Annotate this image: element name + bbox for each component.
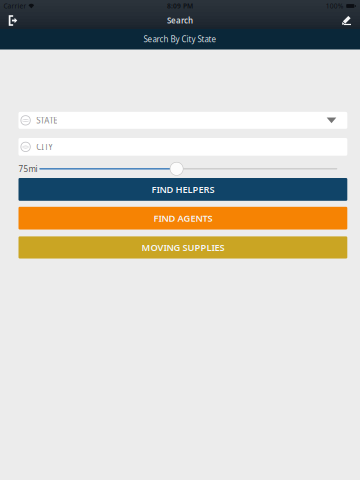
staticText: FIND AGENTS — [153, 212, 212, 224]
button[interactable]: STATE — [18, 112, 347, 129]
staticText: 8:09 PM — [167, 2, 193, 10]
staticText: CITY — [36, 141, 53, 152]
staticText: MOVING SUPPLIES — [141, 241, 224, 254]
staticText: 100% — [326, 2, 344, 10]
button[interactable]: FIND HELPERS — [18, 178, 347, 201]
button[interactable]: Log out — [1, 12, 25, 29]
button[interactable]: CITY — [18, 138, 347, 156]
staticText: FIND HELPERS — [151, 183, 214, 196]
staticText: Carrier — [3, 2, 26, 10]
staticText: STATE — [36, 115, 57, 126]
staticText: Search — [167, 15, 193, 26]
button[interactable]: MOVING SUPPLIES — [18, 236, 347, 258]
button[interactable]: FIND AGENTS — [18, 207, 347, 229]
staticText: Search By City State — [143, 34, 216, 44]
button[interactable]: Compose — [334, 12, 358, 29]
staticText: 75mi — [18, 163, 37, 174]
